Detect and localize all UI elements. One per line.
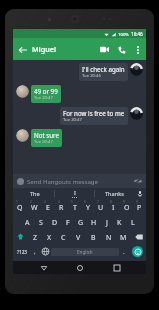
staticText: H <box>91 218 97 228</box>
button[interactable]: 49 or 99 <box>16 85 143 103</box>
staticText: For now is free to me <box>63 109 125 117</box>
staticText: C <box>61 233 66 243</box>
staticText: I <box>74 189 76 197</box>
staticText: L <box>131 218 135 228</box>
button[interactable]: I <box>55 188 94 199</box>
staticText: English <box>77 249 93 255</box>
button[interactable]: 3 <box>41 199 55 214</box>
button[interactable]: Backspace <box>131 229 146 244</box>
button[interactable]: K <box>113 214 126 229</box>
button[interactable]: 1 <box>13 199 27 214</box>
staticText: 49 or 99 <box>34 87 58 95</box>
button[interactable]: ?123 <box>13 244 30 259</box>
staticText: ?123 <box>17 249 27 255</box>
staticText: K <box>117 218 122 228</box>
staticText: X <box>47 233 52 243</box>
staticText: T <box>73 203 77 213</box>
staticText: P <box>137 203 142 213</box>
button[interactable]: More options <box>130 42 145 57</box>
staticText: 2 <box>30 200 32 204</box>
staticText: B <box>91 233 96 243</box>
staticText: Send Hangouts message <box>27 177 99 185</box>
button[interactable]: 8 <box>107 199 120 214</box>
staticText: O <box>124 203 130 213</box>
staticText: S <box>39 218 43 228</box>
button[interactable]: X <box>42 229 56 244</box>
staticText: R <box>59 203 64 213</box>
button[interactable]: G <box>74 214 87 229</box>
staticText: 3 <box>44 200 46 204</box>
button[interactable]: 7 <box>94 199 107 214</box>
button[interactable]: Voice input <box>134 188 146 199</box>
staticText: Thanks <box>105 190 124 198</box>
button[interactable]: D <box>48 214 61 229</box>
staticText: D <box>52 218 58 228</box>
button[interactable]: Z <box>28 229 42 244</box>
button[interactable]: N <box>101 229 116 244</box>
staticText: Q <box>17 203 23 213</box>
button[interactable]: 6 <box>81 199 94 214</box>
button[interactable]: Recents <box>110 261 123 274</box>
staticText: 7 <box>97 200 99 204</box>
staticText: J <box>106 218 108 228</box>
staticText: G <box>78 218 84 228</box>
button[interactable]: A <box>20 214 34 229</box>
staticText: The <box>30 190 40 198</box>
staticText: 6 <box>84 200 86 204</box>
staticText: Tue 20:47 <box>34 139 53 145</box>
staticText: Tue 20:47 <box>63 117 82 123</box>
staticText: A <box>25 218 30 228</box>
button[interactable]: Thanks <box>95 188 134 199</box>
button[interactable]: Call <box>113 41 130 58</box>
button[interactable]: 2 <box>27 199 41 214</box>
staticText: 9 <box>123 200 125 204</box>
button[interactable]: L <box>126 214 139 229</box>
button[interactable]: C <box>56 229 71 244</box>
button[interactable]: F <box>61 214 74 229</box>
button[interactable]: . <box>119 244 129 259</box>
button[interactable]: English <box>51 248 119 256</box>
button[interactable]: For now is free to me <box>16 107 143 125</box>
button[interactable]: Emoji <box>129 244 146 259</box>
button[interactable]: 4 <box>55 199 68 214</box>
button[interactable]: , <box>30 244 39 259</box>
staticText: Not sure <box>34 131 59 139</box>
staticText: I'll check again <box>82 65 125 73</box>
staticText: Tue 20:47 <box>34 95 53 101</box>
staticText: 100% <box>118 31 129 37</box>
button[interactable]: S <box>34 214 48 229</box>
button[interactable]: Video call <box>96 41 113 58</box>
button[interactable]: Change language <box>39 244 51 259</box>
staticText: Tue 20:46 <box>82 73 101 79</box>
button[interactable]: Send Hangouts message <box>13 174 146 188</box>
button[interactable]: V <box>71 229 86 244</box>
staticText: . <box>123 248 125 256</box>
button[interactable]: 9 <box>120 199 133 214</box>
staticText: , <box>34 248 36 256</box>
button[interactable]: H <box>87 214 100 229</box>
button[interactable]: Back <box>37 261 50 274</box>
staticText: I <box>112 203 115 213</box>
button[interactable]: I'll check again <box>16 63 143 81</box>
staticText: E <box>46 203 50 213</box>
button[interactable]: Home <box>73 261 86 274</box>
staticText: N <box>106 233 112 243</box>
button[interactable]: 0 <box>133 199 146 214</box>
button[interactable]: 5 <box>68 199 81 214</box>
staticText: 16:46 <box>131 31 143 37</box>
staticText: F <box>66 218 70 228</box>
button[interactable]: Shift <box>13 229 28 244</box>
staticText: U <box>98 203 104 213</box>
staticText: 4 <box>58 200 60 204</box>
staticText: 0 <box>136 200 138 204</box>
button[interactable]: B <box>86 229 101 244</box>
staticText: W <box>31 203 38 213</box>
staticText: 1 <box>16 200 18 204</box>
button[interactable]: J <box>100 214 113 229</box>
button[interactable]: Back <box>13 40 32 59</box>
button[interactable]: Not sure <box>16 129 143 147</box>
staticText: V <box>76 233 81 243</box>
button[interactable]: The <box>16 188 54 199</box>
staticText: Y <box>86 203 90 213</box>
button[interactable]: M <box>116 229 131 244</box>
